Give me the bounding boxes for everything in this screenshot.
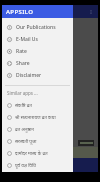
button[interactable]: Widget bbox=[78, 140, 94, 146]
button[interactable]: पूर्व यज्ञ विधि bbox=[2, 159, 73, 171]
button[interactable]: सरस्वती पूजा bbox=[2, 135, 73, 147]
button[interactable]: दामोदर मास्य के व्रत bbox=[2, 147, 73, 159]
staticText: Similar apps ... bbox=[7, 90, 38, 96]
staticText: सरस्वती पूजा bbox=[15, 138, 37, 144]
button[interactable]: Close navigation drawer bbox=[73, 5, 98, 172]
button[interactable]: Share bbox=[2, 57, 73, 69]
button[interactable]: श्री सत्यनारायण व्रत कथा bbox=[2, 111, 73, 123]
button[interactable]: Rate bbox=[2, 45, 73, 57]
button[interactable]: Our Publications bbox=[2, 21, 73, 33]
button[interactable]: More options bbox=[87, 8, 95, 16]
button[interactable]: संकष्टि व्रत bbox=[2, 99, 73, 111]
staticText: पूर्व यज्ञ विधि bbox=[15, 162, 36, 168]
staticText: Rate bbox=[16, 48, 27, 55]
staticText: Our Publications bbox=[16, 24, 56, 31]
button[interactable]: Disclaimer bbox=[2, 69, 73, 81]
staticText: व्रत अनुष्ठान bbox=[15, 126, 34, 132]
staticText: संकष्टि व्रत bbox=[15, 102, 32, 108]
staticText: Share bbox=[16, 60, 30, 67]
staticText: Disclaimer bbox=[16, 72, 42, 79]
button[interactable]: E-Mail Us bbox=[2, 33, 73, 45]
button[interactable]: व्रत अनुष्ठान bbox=[2, 123, 73, 135]
staticText: E-Mail Us bbox=[16, 36, 38, 43]
staticText: श्री सत्यनारायण व्रत कथा bbox=[15, 114, 56, 120]
staticText: APPSILO bbox=[6, 8, 34, 16]
staticText: दामोदर मास्य के व्रत bbox=[15, 150, 48, 156]
button[interactable]: APPSILO bbox=[2, 5, 73, 18]
